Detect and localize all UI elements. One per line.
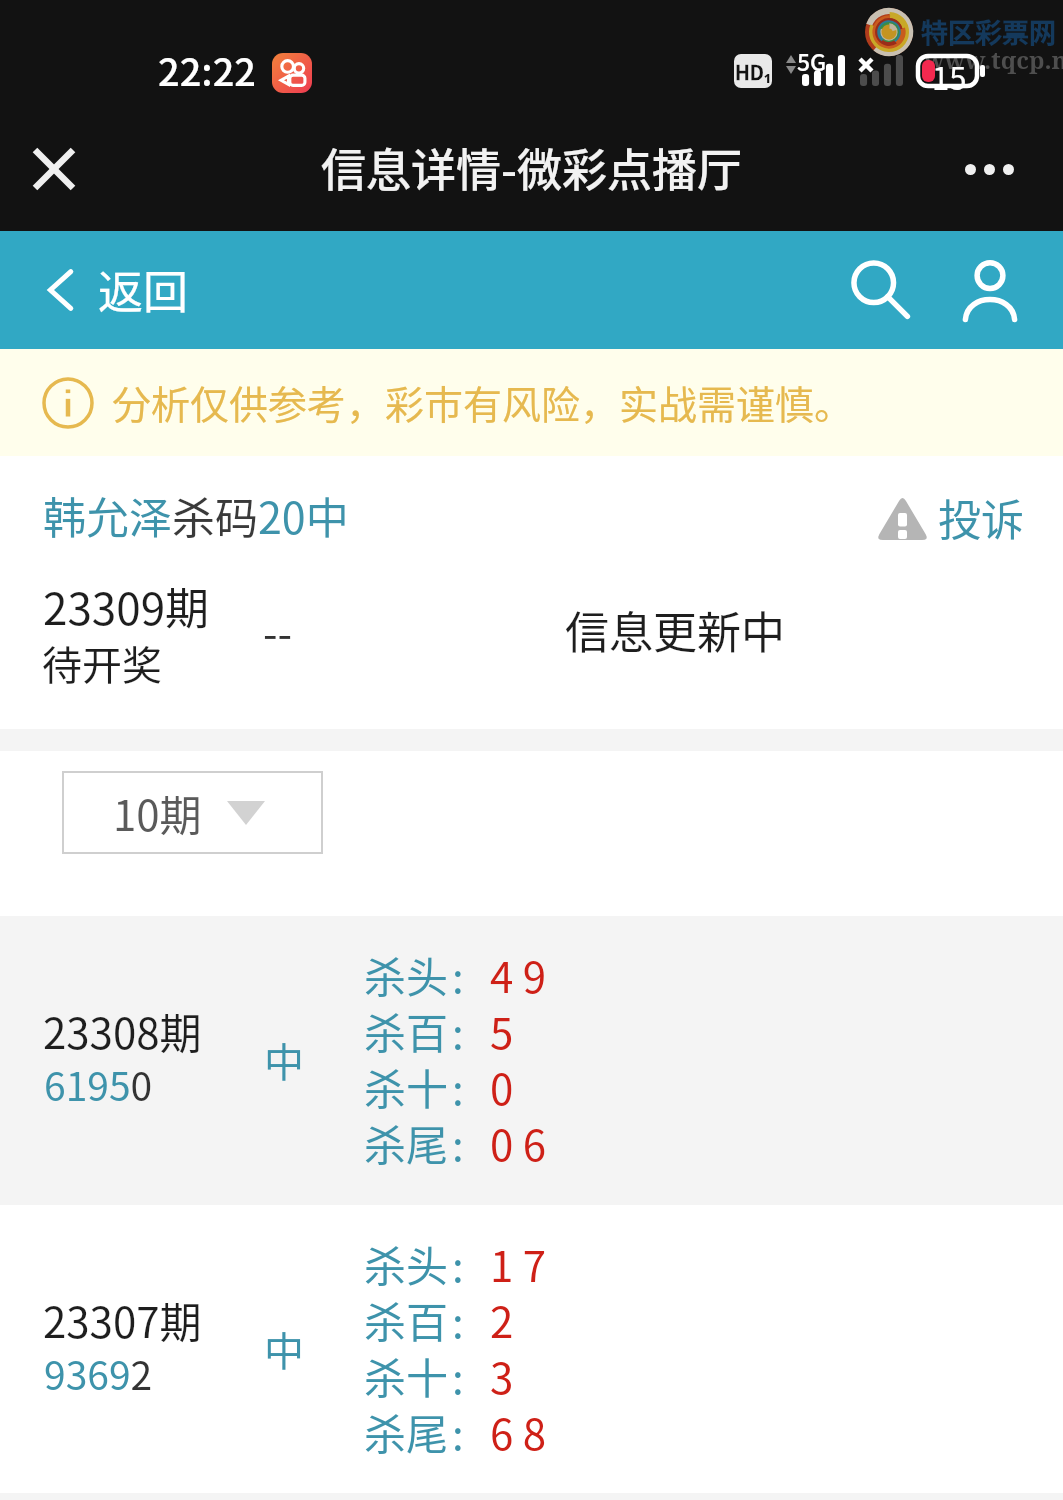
staticText: 杀尾 <box>364 1401 449 1462</box>
staticText: -- <box>263 600 293 661</box>
staticText: 61950 <box>44 1056 153 1112</box>
staticText: 杀尾 <box>364 1112 449 1173</box>
staticText: 2 <box>490 1289 514 1350</box>
button[interactable]: 23308期 <box>0 916 1063 1205</box>
staticText: : <box>452 944 464 1005</box>
staticText: 4 9 <box>490 944 547 1005</box>
staticText: 3 <box>490 1345 514 1406</box>
staticText: HD₁ <box>735 57 772 86</box>
staticText: : <box>452 1112 464 1173</box>
staticText: 23308期 <box>43 1000 202 1061</box>
staticText: 待开奖 <box>42 634 162 692</box>
staticText: 杀百 <box>364 1000 449 1061</box>
staticText: 返回 <box>98 257 189 322</box>
staticText: 22:22 <box>158 42 256 97</box>
staticText: 93692 <box>44 1345 153 1401</box>
button[interactable]: More options <box>941 133 1037 205</box>
staticText: 投诉 <box>938 486 1024 548</box>
staticText: : <box>452 1056 464 1117</box>
staticText: 中 <box>264 1320 304 1378</box>
staticText: 分析仅供参考，彩市有风险，实战需谨慎。 <box>112 374 854 430</box>
staticText: 中 <box>264 1031 304 1089</box>
staticText: : <box>452 1401 464 1462</box>
staticText: 杀头 <box>364 1233 449 1294</box>
staticText: www.tqcp.net <box>924 43 1063 76</box>
staticText: 15 <box>932 54 967 99</box>
button[interactable]: 投诉 <box>876 481 1024 553</box>
staticText: 5G <box>797 44 827 77</box>
staticText: : <box>452 1000 464 1061</box>
staticText: : <box>452 1345 464 1406</box>
staticText: 5 <box>490 1000 514 1061</box>
button[interactable]: Profile <box>945 245 1035 335</box>
staticText: 10期 <box>113 782 202 843</box>
staticText: 信息更新中 <box>565 598 785 662</box>
staticText: 信息详情-微彩点播厅 <box>321 135 743 200</box>
staticText: 0 6 <box>490 1112 547 1173</box>
button[interactable]: Close <box>17 132 91 206</box>
button[interactable]: 10期 <box>62 771 323 854</box>
staticText: 杀头 <box>364 944 449 1005</box>
staticText: 23307期 <box>43 1289 202 1350</box>
button[interactable]: 返回 <box>48 245 189 335</box>
staticText: 杀十 <box>364 1345 449 1406</box>
staticText: 0 <box>490 1056 514 1117</box>
staticText: 韩允泽杀码20中 <box>43 484 349 546</box>
staticText: 杀十 <box>364 1056 449 1117</box>
staticText: : <box>452 1233 464 1294</box>
staticText: 特区彩票网 <box>921 12 1056 51</box>
staticText: 杀百 <box>364 1289 449 1350</box>
button[interactable]: Search <box>836 245 926 335</box>
button[interactable]: 23307期 <box>0 1205 1063 1494</box>
staticText: 1 7 <box>490 1233 547 1294</box>
staticText: 23309期 <box>43 574 210 638</box>
staticText: : <box>452 1289 464 1350</box>
staticText: 6 8 <box>490 1401 547 1462</box>
